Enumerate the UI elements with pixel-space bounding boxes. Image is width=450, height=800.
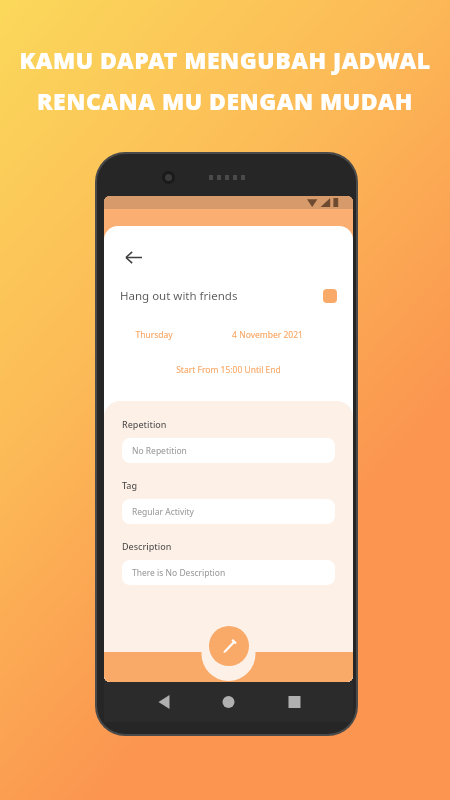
button[interactable]: Thursday (118, 322, 190, 348)
staticText: Thursday (135, 329, 173, 341)
button[interactable]: 4 November 2021 (196, 322, 339, 348)
button[interactable]: Edit (209, 626, 249, 666)
staticText: No Repetition (132, 445, 187, 457)
staticText: Repetition (122, 418, 167, 430)
button[interactable]: There is No Description (122, 560, 335, 585)
staticText: Tag (122, 479, 138, 491)
staticText: There is No Description (132, 567, 226, 579)
staticText: Description (122, 540, 172, 552)
staticText: 4 November 2021 (232, 329, 303, 341)
staticText: Start From 15:00 Until End (176, 364, 281, 376)
button[interactable]: Start From 15:00 Until End (118, 357, 339, 383)
button[interactable]: Regular Activity (122, 499, 335, 524)
button[interactable]: Back (118, 242, 148, 272)
button[interactable]: Color tag (323, 289, 337, 303)
staticText: Regular Activity (132, 506, 194, 518)
staticText: RENCANA MU DENGAN MUDAH (37, 85, 413, 116)
button[interactable]: No Repetition (122, 438, 335, 463)
staticText: Hang out with friends (120, 288, 238, 304)
staticText: KAMU DAPAT MENGUBAH JADWAL (19, 44, 431, 75)
